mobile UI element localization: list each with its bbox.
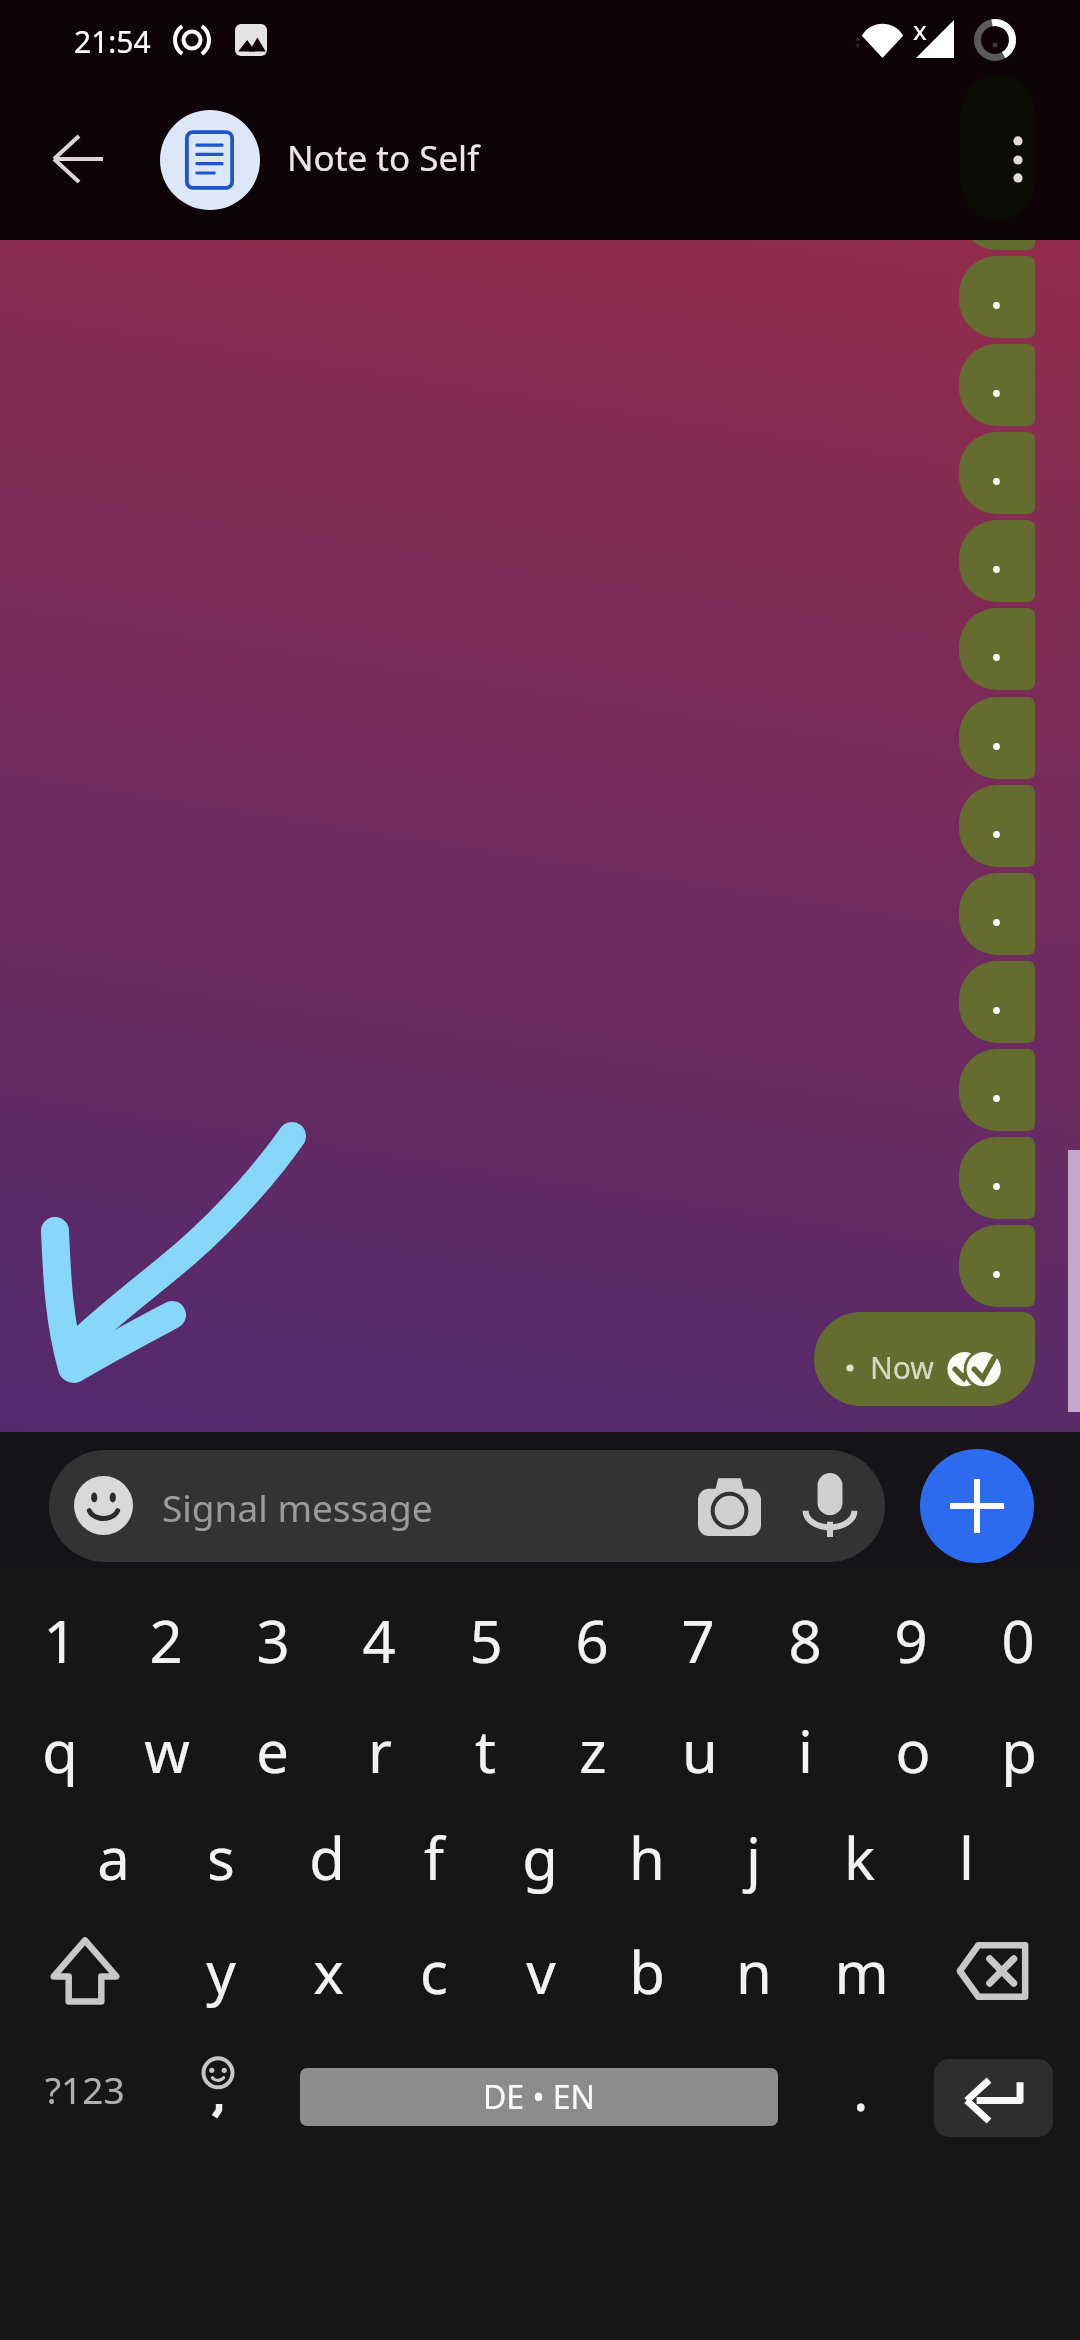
button[interactable] (959, 961, 1035, 1043)
staticText: Note to Self (287, 134, 480, 182)
button[interactable]: q (6, 1695, 113, 1805)
button[interactable]: c (381, 1916, 487, 2026)
button[interactable]: 9 (858, 1585, 964, 1695)
staticText: n (736, 1932, 772, 2011)
button[interactable] (959, 432, 1035, 514)
button[interactable]: 5 (433, 1585, 539, 1695)
button[interactable]: ?123 (15, 2034, 155, 2144)
staticText: ?123 (45, 2064, 125, 2114)
button[interactable] (959, 1049, 1035, 1131)
staticText: 5 (469, 1601, 503, 1680)
button[interactable]: 0 (965, 1585, 1071, 1695)
staticText: b (629, 1932, 665, 2011)
staticText: g (522, 1818, 558, 1897)
staticText: h (629, 1818, 665, 1897)
button[interactable]: d (273, 1802, 380, 1912)
button[interactable]: 7 (645, 1585, 751, 1695)
staticText: 21:54 (74, 21, 151, 62)
button[interactable] (959, 240, 1035, 250)
button[interactable] (959, 344, 1035, 426)
staticText: p (1001, 1711, 1037, 1790)
button[interactable]: 8 (752, 1585, 858, 1695)
staticText: . (853, 2049, 869, 2128)
button[interactable]: 3 (220, 1585, 326, 1695)
staticText: 2 (149, 1601, 183, 1680)
button[interactable]: Enter (934, 2059, 1053, 2137)
button[interactable]: Emoji (49, 1450, 885, 1562)
staticText: m (834, 1932, 889, 2011)
button[interactable]: . (808, 2033, 914, 2143)
staticText: 0 (1001, 1601, 1035, 1680)
button[interactable]: z (539, 1695, 646, 1805)
button[interactable]: 6 (539, 1585, 645, 1695)
button[interactable]: DE • EN (300, 2068, 778, 2126)
button[interactable]: e (219, 1695, 326, 1805)
button[interactable]: r (326, 1695, 433, 1805)
button[interactable]: Backspace (927, 1916, 1057, 2026)
staticText: u (682, 1711, 718, 1790)
button[interactable]: a (60, 1802, 167, 1912)
button[interactable]: Shift (20, 1916, 150, 2026)
button[interactable] (959, 697, 1035, 779)
staticText: Signal message (162, 1482, 433, 1532)
staticText: o (895, 1711, 931, 1790)
button[interactable] (959, 1225, 1035, 1307)
button[interactable]: s (167, 1802, 274, 1912)
staticText: i (798, 1711, 813, 1790)
button[interactable]: p (965, 1695, 1072, 1805)
button[interactable]: More options (970, 112, 1066, 208)
button[interactable]: x (275, 1916, 381, 2026)
button[interactable]: f (380, 1802, 487, 1912)
staticText: k (844, 1818, 875, 1897)
button[interactable]: k (806, 1802, 913, 1912)
button[interactable] (959, 1137, 1035, 1219)
button[interactable]: o (859, 1695, 966, 1805)
staticText: y (206, 1932, 236, 2011)
button[interactable]: j (700, 1802, 807, 1912)
button[interactable]: 2 (113, 1585, 219, 1695)
button[interactable]: Voice message (786, 1461, 874, 1549)
staticText: 7 (681, 1601, 715, 1680)
staticText: c (420, 1932, 448, 2011)
button[interactable]: i (752, 1695, 859, 1805)
staticText: e (256, 1711, 289, 1790)
button[interactable]: u (646, 1695, 753, 1805)
button[interactable]: Emoji (59, 1461, 147, 1549)
button[interactable]: l (913, 1802, 1020, 1912)
staticText: v (526, 1932, 556, 2011)
staticText: t (475, 1711, 496, 1790)
staticText: Now (870, 1347, 934, 1388)
button[interactable] (959, 608, 1035, 690)
button[interactable]: t (432, 1695, 539, 1805)
button[interactable]: n (701, 1916, 807, 2026)
button[interactable] (959, 785, 1035, 867)
button[interactable]: Add attachment (920, 1449, 1034, 1563)
button[interactable] (959, 873, 1035, 955)
button[interactable]: m (808, 1916, 914, 2026)
staticText: x (913, 12, 927, 47)
staticText: DE • EN (483, 2075, 595, 2119)
button[interactable]: Camera (685, 1462, 773, 1550)
button[interactable]: Back (30, 111, 126, 207)
staticText: z (579, 1711, 607, 1790)
staticText: l (959, 1818, 974, 1897)
button[interactable]: y (168, 1916, 274, 2026)
staticText: f (424, 1818, 444, 1897)
button[interactable]: h (593, 1802, 700, 1912)
button[interactable]: 1 (7, 1585, 113, 1695)
button[interactable] (959, 520, 1035, 602)
button[interactable]: w (113, 1695, 220, 1805)
button[interactable]: g (486, 1802, 593, 1912)
button[interactable] (959, 256, 1035, 338)
staticText: 9 (894, 1601, 928, 1680)
button[interactable]: b (594, 1916, 700, 2026)
button[interactable]: Now (814, 1312, 1035, 1406)
staticText: d (309, 1818, 345, 1897)
staticText: 8 (788, 1601, 822, 1680)
button[interactable]: 4 (326, 1585, 432, 1695)
button[interactable]: Emoji and comma (163, 2033, 273, 2143)
staticText: 6 (575, 1601, 609, 1680)
staticText: 3 (256, 1601, 290, 1680)
button[interactable]: Note to Self (160, 87, 720, 232)
button[interactable]: v (488, 1916, 594, 2026)
